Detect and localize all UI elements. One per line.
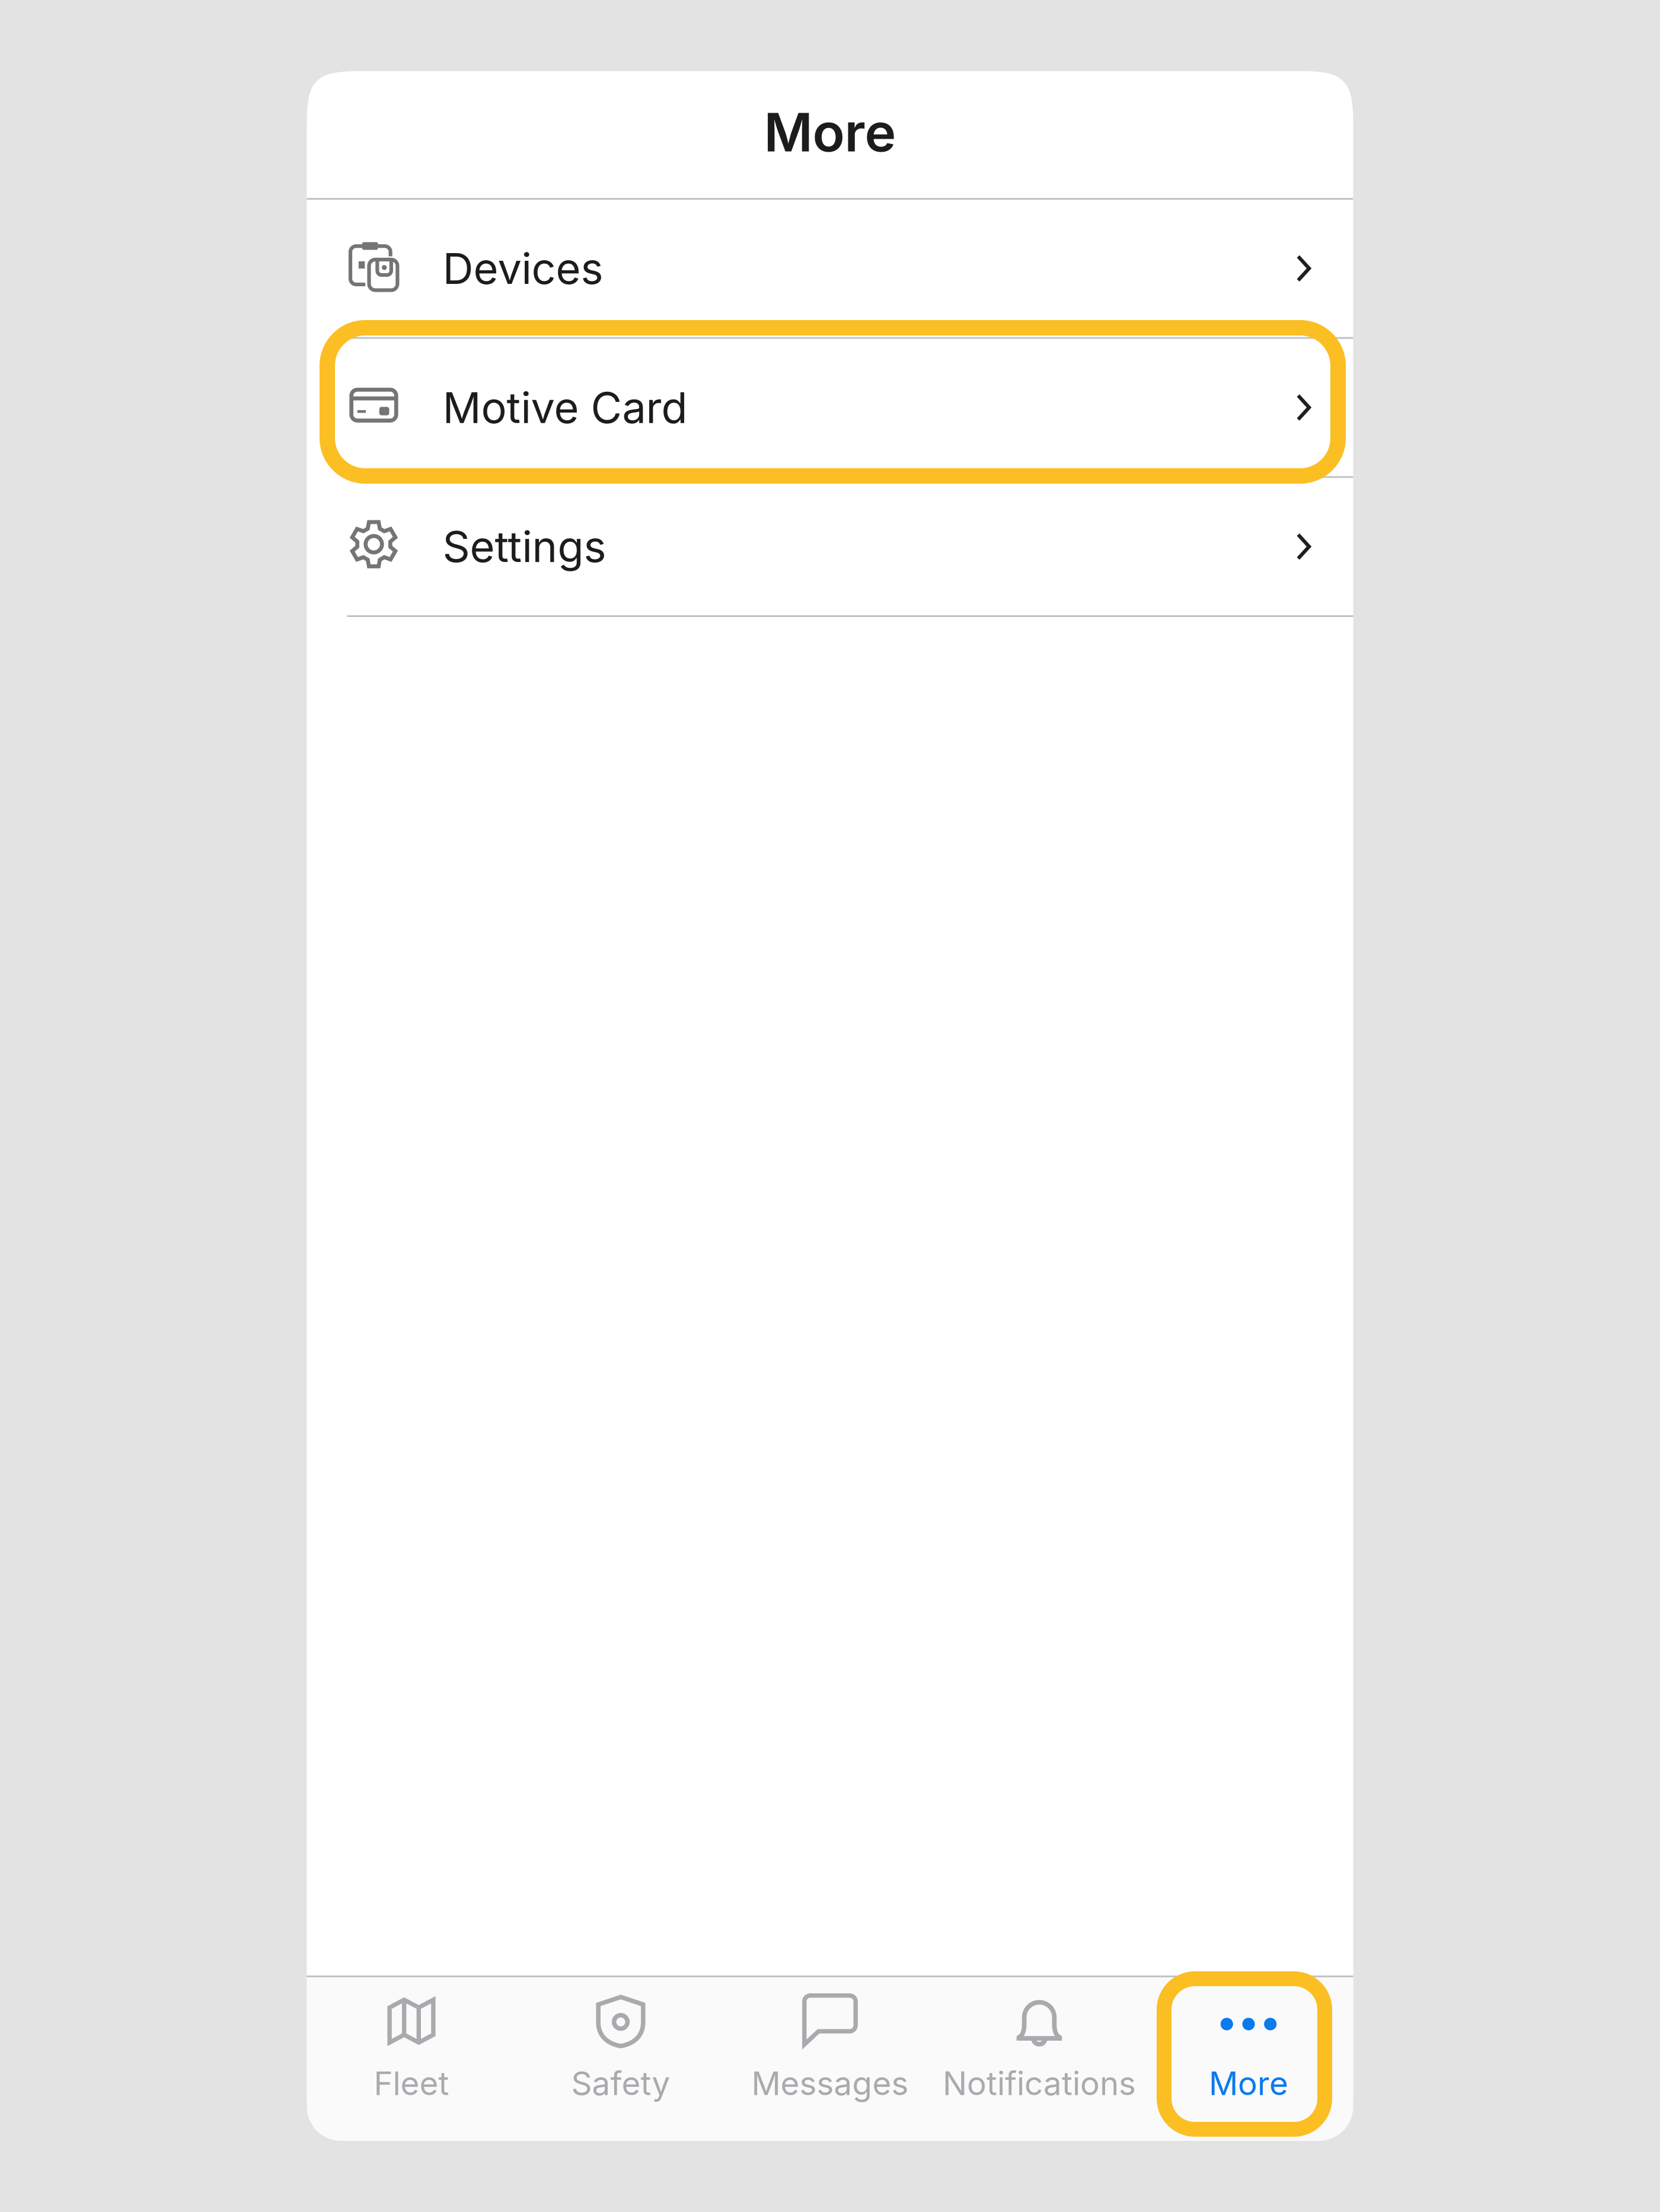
staticText: Notifications: [943, 2064, 1136, 2103]
button[interactable]: Motive Card: [307, 339, 1353, 476]
button[interactable]: Fleet: [307, 1977, 516, 2141]
button[interactable]: Messages: [725, 1977, 935, 2141]
staticText: Fleet: [374, 2064, 449, 2103]
staticText: Safety: [571, 2064, 670, 2103]
staticText: Messages: [751, 2064, 909, 2103]
button[interactable]: Notifications: [935, 1977, 1144, 2141]
button[interactable]: Safety: [516, 1977, 725, 2141]
staticText: More: [764, 100, 896, 164]
staticText: Motive Card: [443, 382, 687, 433]
button[interactable]: Settings: [307, 478, 1353, 615]
button[interactable]: More: [1144, 1977, 1353, 2141]
staticText: Settings: [443, 521, 606, 572]
button[interactable]: Devices: [307, 200, 1353, 337]
staticText: More: [1209, 2064, 1288, 2103]
staticText: Devices: [443, 243, 603, 294]
